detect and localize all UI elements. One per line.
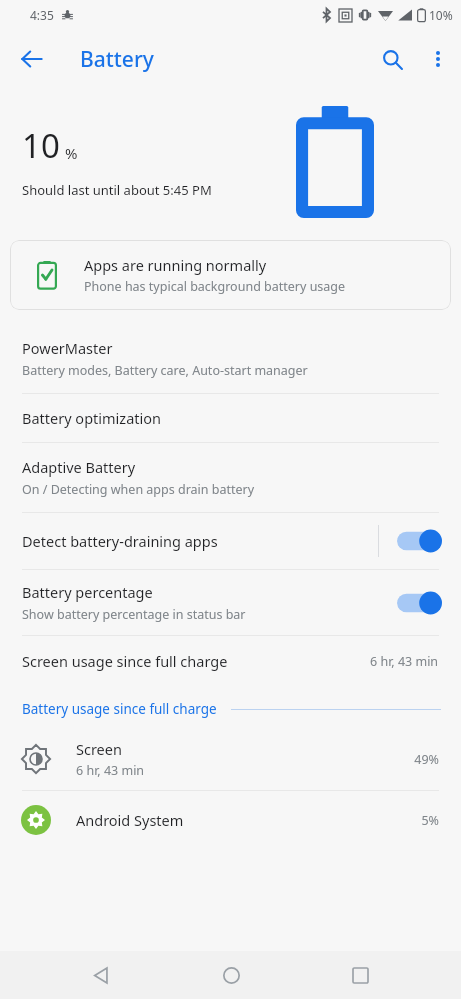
staticText: Screen usage since full charge (22, 651, 370, 671)
staticText: PowerMaster (22, 338, 113, 358)
button[interactable] (397, 588, 445, 618)
staticText: Battery optimization (22, 408, 161, 428)
staticText: Battery (80, 45, 154, 74)
staticText: 5% (421, 812, 439, 829)
button[interactable]: Battery optimization (0, 394, 461, 442)
button[interactable]: Recent apps (331, 951, 389, 999)
button[interactable]: Back (72, 951, 130, 999)
staticText: Android System (76, 810, 184, 830)
staticText: 6 hr, 43 min (76, 762, 145, 779)
staticText: 6 hr, 43 min (370, 653, 439, 670)
button[interactable]: Adaptive Battery (0, 443, 461, 512)
staticText: Apps are running normally (84, 255, 267, 275)
button[interactable]: Apps are running normally (10, 240, 451, 310)
staticText: Adaptive Battery (22, 457, 136, 477)
staticText: 49% (414, 751, 439, 768)
button[interactable]: Back (10, 37, 54, 81)
staticText: Detect battery-draining apps (22, 531, 218, 551)
button[interactable]: PowerMaster (0, 324, 461, 393)
staticText: Battery percentage (22, 582, 153, 602)
button[interactable] (397, 526, 445, 556)
button[interactable]: Android System (0, 791, 461, 849)
staticText: 4:35 (30, 7, 54, 23)
button[interactable]: Battery percentage (0, 570, 461, 635)
staticText: Should last until about 5:45 PM (22, 181, 212, 199)
staticText: Screen (76, 739, 122, 759)
staticText: Phone has typical background battery usa… (84, 278, 346, 295)
staticText: On / Detecting when apps drain battery (22, 481, 255, 498)
staticText: Battery modes, Battery care, Auto-start … (22, 362, 308, 379)
button[interactable]: Home (202, 951, 260, 999)
staticText: 10 (22, 123, 60, 168)
staticText: Battery usage since full charge (22, 700, 217, 718)
button[interactable]: Screen (0, 728, 461, 790)
button[interactable]: More options (415, 36, 461, 82)
button[interactable]: Search (369, 36, 415, 82)
staticText: 10% (429, 7, 453, 23)
staticText: % (65, 143, 78, 163)
staticText: Show battery percentage in status bar (22, 606, 246, 623)
button[interactable]: Detect battery-draining apps (0, 513, 461, 569)
button[interactable]: Screen usage since full charge (0, 636, 461, 686)
